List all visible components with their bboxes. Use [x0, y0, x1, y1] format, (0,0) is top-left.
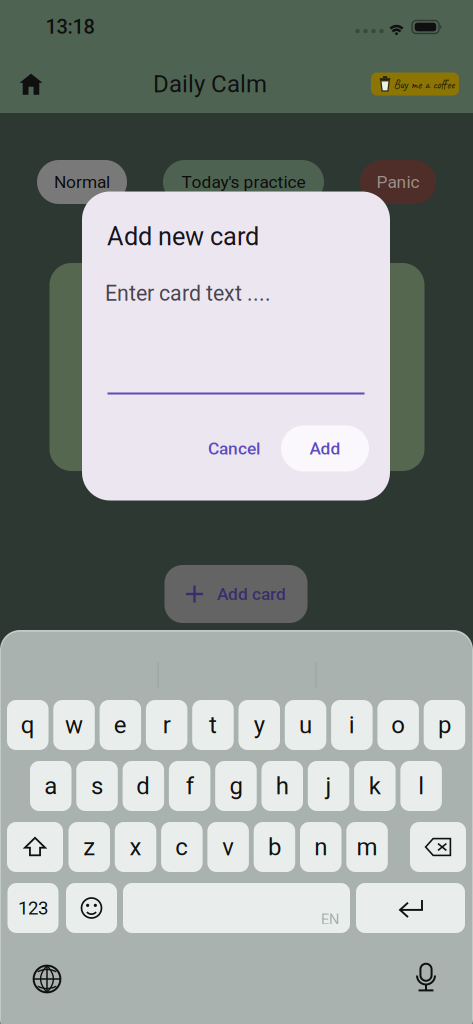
- button[interactable]: v: [207, 822, 249, 872]
- staticText: 123: [18, 897, 48, 919]
- staticText: g: [229, 772, 242, 800]
- staticText: f: [186, 772, 194, 800]
- staticText: Daily Calm: [153, 70, 267, 98]
- staticText: k: [369, 772, 381, 800]
- staticText: z: [83, 833, 95, 861]
- staticText: q: [21, 711, 35, 739]
- staticText: l: [418, 772, 424, 800]
- button[interactable]: s: [76, 761, 118, 811]
- button[interactable]: Buy me a coffee: [371, 72, 459, 95]
- staticText: Today's practice: [181, 172, 305, 192]
- button[interactable]: n: [300, 822, 341, 872]
- button[interactable]: Voice input: [401, 953, 451, 1003]
- button[interactable]: x: [115, 822, 156, 872]
- staticText: Add: [309, 438, 340, 459]
- staticText: h: [276, 772, 289, 800]
- staticText: s: [91, 772, 103, 800]
- staticText: y: [254, 711, 265, 739]
- button[interactable]: Emoji: [66, 883, 117, 933]
- button[interactable]: u: [285, 700, 326, 750]
- button[interactable]: q: [7, 700, 48, 750]
- staticText: t: [209, 711, 217, 739]
- button[interactable]: b: [254, 822, 295, 872]
- staticText: d: [136, 772, 150, 800]
- staticText: c: [175, 833, 188, 861]
- staticText: x: [130, 833, 142, 861]
- staticText: EN: [321, 911, 339, 928]
- staticText: 13:18: [45, 15, 94, 39]
- staticText: i: [349, 711, 355, 739]
- staticText: Normal: [54, 172, 110, 192]
- button[interactable]: w: [53, 700, 95, 750]
- button[interactable]: Numbers and symbols: [7, 883, 58, 933]
- staticText: Add new card: [107, 222, 259, 251]
- staticText: j: [326, 772, 332, 800]
- button[interactable]: i: [331, 700, 373, 750]
- staticText: Enter card text ....: [105, 281, 271, 306]
- button[interactable]: f: [169, 761, 210, 811]
- button[interactable]: Shift: [7, 822, 63, 872]
- button[interactable]: Add: [281, 425, 369, 471]
- staticText: m: [357, 833, 378, 861]
- staticText: e: [114, 711, 127, 739]
- button[interactable]: o: [377, 700, 419, 750]
- button[interactable]: Backspace: [410, 822, 466, 872]
- button[interactable]: h: [261, 761, 303, 811]
- staticText: Buy me a coffee: [393, 77, 454, 92]
- staticText: r: [163, 711, 171, 739]
- button[interactable]: m: [346, 822, 388, 872]
- button[interactable]: Panic: [360, 160, 436, 204]
- button[interactable]: Change language: [22, 954, 72, 1004]
- button[interactable]: j: [308, 761, 349, 811]
- button[interactable]: z: [68, 822, 110, 872]
- button[interactable]: t: [192, 700, 234, 750]
- button[interactable]: c: [161, 822, 203, 872]
- button[interactable]: Home: [9, 62, 53, 106]
- staticText: u: [299, 711, 312, 739]
- button[interactable]: Add card: [164, 565, 307, 623]
- staticText: w: [65, 711, 83, 739]
- button[interactable]: g: [215, 761, 257, 811]
- button[interactable]: e: [100, 700, 141, 750]
- button[interactable]: p: [424, 700, 465, 750]
- button[interactable]: d: [123, 761, 164, 811]
- button[interactable]: Normal: [37, 160, 127, 204]
- button[interactable]: y: [238, 700, 280, 750]
- button[interactable]: Today's practice: [163, 160, 324, 204]
- staticText: o: [391, 711, 405, 739]
- button[interactable]: a: [30, 761, 71, 811]
- button[interactable]: Space: [123, 883, 350, 933]
- button[interactable]: Cancel: [196, 426, 272, 470]
- staticText: n: [314, 833, 327, 861]
- button[interactable]: r: [146, 700, 187, 750]
- button[interactable]: l: [400, 761, 442, 811]
- staticText: p: [438, 711, 451, 739]
- button[interactable]: k: [354, 761, 396, 811]
- staticText: Add card: [217, 584, 286, 604]
- staticText: Cancel: [208, 438, 260, 459]
- button[interactable]: Return: [356, 883, 465, 933]
- staticText: Panic: [376, 172, 419, 192]
- staticText: a: [44, 772, 57, 800]
- staticText: b: [268, 833, 281, 861]
- staticText: v: [222, 833, 234, 861]
